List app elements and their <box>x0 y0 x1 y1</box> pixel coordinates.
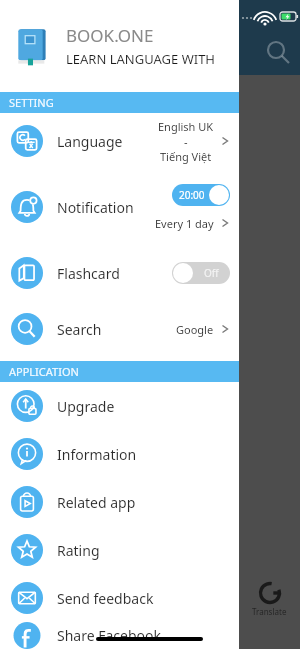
staticText: Notification <box>57 198 134 217</box>
staticText: Share Facebook <box>57 626 161 645</box>
staticText: - <box>184 134 188 149</box>
staticText: Search <box>57 320 102 339</box>
staticText: English UK <box>158 119 214 134</box>
button[interactable]: 20:00 <box>172 184 230 206</box>
button[interactable]: Language <box>0 113 239 169</box>
staticText: Flashcard <box>57 264 120 283</box>
button[interactable]: Off <box>172 262 230 284</box>
button[interactable]: Search <box>0 301 239 357</box>
button[interactable]: Send feedback <box>0 574 239 622</box>
staticText: Rating <box>57 541 100 560</box>
staticText: 20:00 <box>179 188 205 202</box>
staticText: Send feedback <box>57 589 154 608</box>
staticText: LEARN LANGUAGE WITH F… <box>66 50 231 68</box>
staticText: Information <box>57 445 137 464</box>
button[interactable]: Flashcard <box>0 245 239 301</box>
button[interactable]: Rating <box>0 526 239 574</box>
button[interactable]: Notification <box>0 169 239 245</box>
staticText: BOOK.ONE <box>66 24 154 47</box>
button[interactable]: Related app <box>0 478 239 526</box>
staticText: Translate <box>252 606 287 617</box>
staticText: APPLICATION <box>9 364 79 379</box>
button[interactable]: Information <box>0 430 239 478</box>
button[interactable]: Share Facebook <box>0 622 239 649</box>
button[interactable]: Translate <box>238 575 300 623</box>
staticText: Every 1 day <box>155 216 214 231</box>
button[interactable]: Upgrade <box>0 382 239 430</box>
staticText: Related app <box>57 493 136 512</box>
staticText: Off <box>204 266 219 280</box>
staticText: Upgrade <box>57 397 115 416</box>
staticText: Tiếng Việt <box>160 149 212 164</box>
staticText: Language <box>57 132 123 151</box>
staticText: Google <box>176 322 214 337</box>
staticText: SETTING <box>9 95 54 110</box>
